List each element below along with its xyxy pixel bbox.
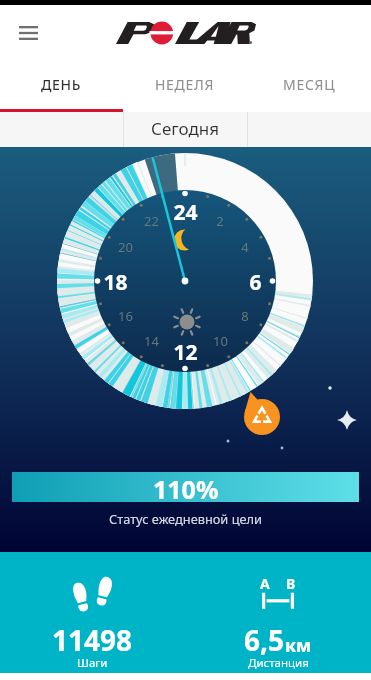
staticText: 18 [103, 268, 128, 297]
button[interactable]: A [185, 552, 371, 673]
button[interactable]: 11498 [0, 552, 185, 673]
staticText: МЕСЯЦ [283, 75, 336, 94]
staticText: 6,5 [244, 621, 285, 659]
staticText: Дистанция [248, 655, 309, 669]
button[interactable]: Menu [9, 14, 47, 52]
button[interactable]: НЕДЕЛЯ [123, 61, 247, 112]
button[interactable]: МЕСЯЦ [247, 61, 371, 112]
staticText: A [260, 574, 270, 593]
staticText: 12 [173, 338, 198, 367]
staticText: ДЕНЬ [41, 75, 82, 94]
button[interactable]: Сегодня [0, 112, 371, 147]
staticText: 2 [216, 212, 224, 230]
staticText: 6 [249, 268, 262, 297]
staticText: Сегодня [151, 117, 220, 140]
staticText: Шаги [77, 655, 108, 669]
staticText: 16 [118, 307, 133, 325]
staticText: 14 [144, 332, 159, 350]
staticText: 110% [153, 472, 219, 502]
staticText: B [286, 574, 296, 593]
staticText: 10 [213, 332, 228, 350]
button[interactable] [122, 20, 250, 46]
button[interactable]: 110% [12, 472, 359, 502]
staticText: 24 [173, 198, 198, 227]
staticText: км [285, 633, 312, 658]
button[interactable]: ДЕНЬ [0, 61, 123, 112]
staticText: 20 [118, 238, 133, 256]
staticText: НЕДЕЛЯ [155, 75, 215, 94]
staticText: 4 [241, 238, 249, 256]
staticText: Статус ежедневной цели [109, 510, 262, 527]
staticText: 8 [241, 307, 249, 325]
staticText: 22 [144, 212, 159, 230]
staticText: 11498 [52, 621, 133, 659]
